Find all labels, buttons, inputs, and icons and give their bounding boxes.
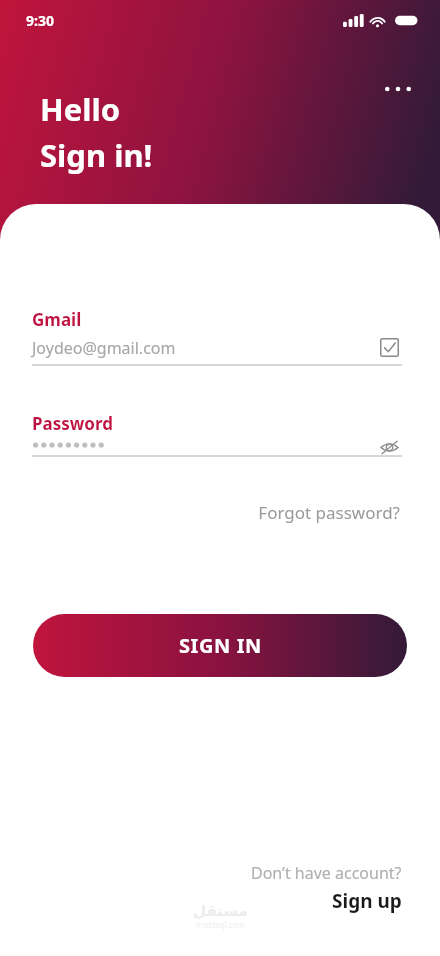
button[interactable]: More options	[378, 74, 418, 104]
button[interactable]: SIGN IN	[33, 614, 407, 677]
button[interactable]: Email valid	[376, 334, 402, 360]
staticText: Sign up	[332, 888, 402, 914]
staticText: Password	[32, 412, 113, 435]
button[interactable]: Password	[32, 412, 402, 457]
staticText: mostaql.com	[196, 919, 245, 930]
staticText: Sign in!	[40, 134, 153, 176]
staticText: Don’t have account?	[251, 862, 402, 884]
button[interactable]: Gmail	[32, 308, 402, 366]
staticText: Gmail	[32, 308, 82, 331]
button[interactable]: Show password	[376, 434, 402, 460]
staticText: 9:30	[26, 11, 54, 30]
staticText: Forgot password?	[258, 501, 400, 524]
button[interactable]: Sign up	[332, 888, 402, 914]
staticText: Joydeo@gmail.com	[32, 337, 176, 359]
staticText: SIGN IN	[179, 632, 262, 659]
button[interactable]: Forgot password?	[254, 497, 404, 528]
staticText: Hello	[40, 88, 121, 130]
staticText: مستقل	[193, 902, 248, 919]
